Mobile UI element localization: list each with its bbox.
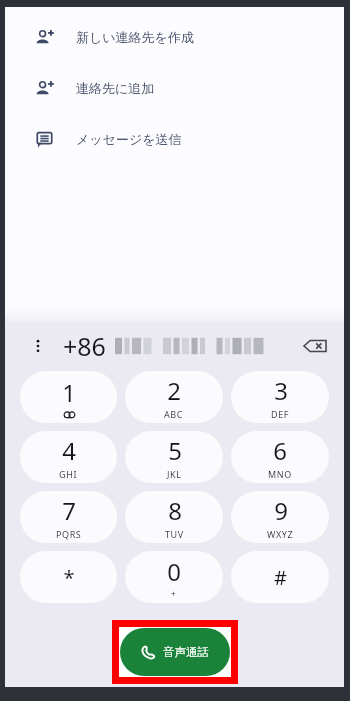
staticText: 3 [274,374,288,407]
staticText: PQRS [56,528,82,540]
staticText: * [63,564,75,591]
button[interactable]: メッセージを送信 [5,123,344,155]
button[interactable]: Backspace [298,329,332,363]
button[interactable]: 4 [20,431,117,483]
staticText: JKL [167,468,182,480]
button[interactable]: 5 [125,431,223,483]
staticText: 4 [62,434,76,467]
button[interactable]: 音声通話 [120,628,230,676]
staticText: TUV [165,528,184,540]
staticText: 新しい連絡先を作成 [76,29,194,45]
button[interactable]: 2 [125,371,223,423]
button[interactable]: 1 [20,371,117,423]
staticText: 9 [274,494,288,527]
button[interactable]: 0 [125,551,223,603]
staticText: 0 [167,555,181,588]
staticText: 連絡先に追加 [76,80,155,96]
button[interactable]: 7 [20,491,117,543]
button[interactable]: * [20,551,117,603]
button[interactable]: 8 [125,491,223,543]
button[interactable]: More options [27,335,49,357]
button[interactable]: # [231,551,329,603]
button[interactable]: 9 [231,491,329,543]
button[interactable]: 連絡先に追加 [5,72,344,104]
button[interactable]: 3 [231,371,329,423]
staticText: 1 [62,376,76,409]
staticText: WXYZ [267,528,294,540]
staticText: 8 [168,494,182,527]
staticText: # [274,564,287,591]
staticText: 6 [273,434,287,467]
staticText: ABC [164,408,184,420]
staticText: +86 [63,329,106,363]
staticText: 7 [62,494,76,527]
staticText: メッセージを送信 [76,131,182,147]
button[interactable]: 6 [231,431,329,483]
staticText: 2 [167,374,181,407]
staticText: MNO [268,468,292,480]
staticText: GHI [59,468,78,480]
staticText: 音声通話 [163,645,209,659]
staticText: 5 [168,434,182,467]
staticText: DEF [271,408,290,420]
button[interactable]: 新しい連絡先を作成 [5,21,344,53]
staticText: + [171,588,177,599]
